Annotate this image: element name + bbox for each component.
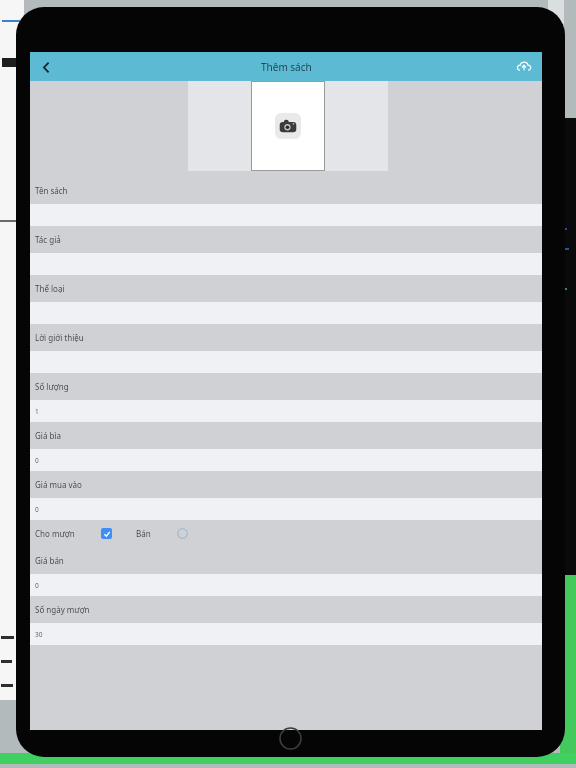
staticText: 1 [35, 407, 39, 416]
staticText: Giá bán [35, 555, 64, 566]
staticText: Số ngày mượn [35, 604, 90, 615]
button[interactable]: Home [279, 727, 302, 750]
button[interactable]: Bán [136, 528, 188, 539]
staticText: Tác giả [35, 234, 61, 245]
button[interactable]: Add photo [251, 81, 325, 171]
staticText: 0 [35, 505, 39, 514]
staticText: Số lượng [35, 381, 69, 392]
staticText: Cho mượn [35, 528, 75, 539]
staticText: Thể loại [35, 283, 65, 294]
staticText: Giá mua vào [35, 479, 82, 490]
staticText: Tên sách [35, 185, 68, 196]
button[interactable]: Upload [512, 55, 536, 79]
staticText: 30 [35, 630, 43, 639]
button[interactable]: 30 [30, 623, 542, 645]
staticText: Bán [136, 528, 151, 539]
button[interactable]: Cho mượn [35, 528, 112, 539]
staticText: Giá bìa [35, 430, 61, 441]
button[interactable]: Back [33, 54, 59, 80]
staticText: 0 [35, 581, 39, 590]
staticText: 0 [35, 456, 39, 465]
staticText: Lời giới thiệu [35, 332, 84, 343]
staticText: Thêm sách [261, 60, 312, 74]
